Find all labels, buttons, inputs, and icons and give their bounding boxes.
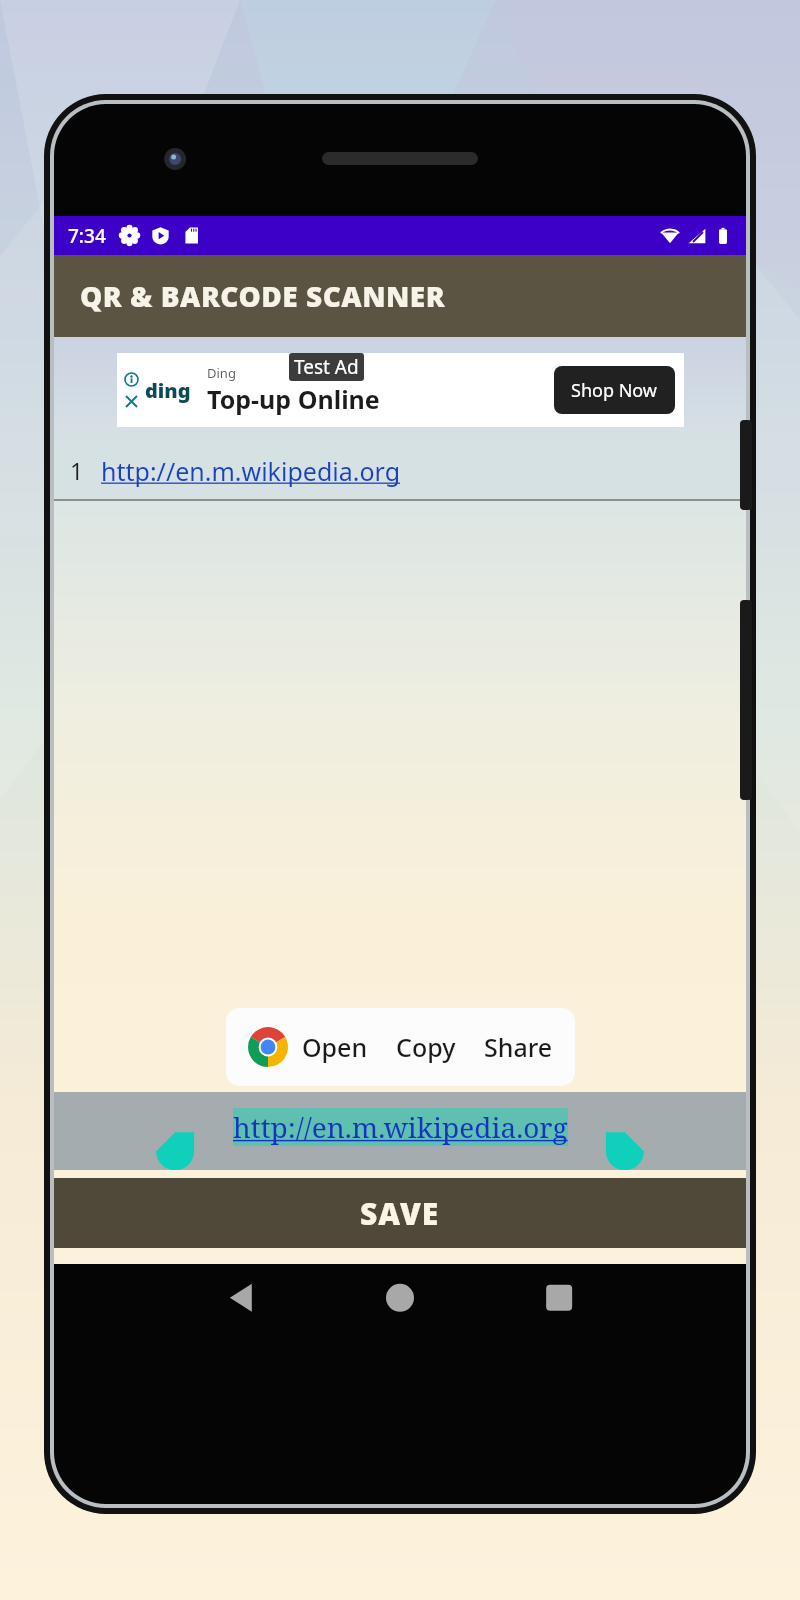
button[interactable]: Shop Now (554, 366, 675, 414)
staticText: Ding (207, 364, 236, 382)
other: Close ad (124, 394, 139, 409)
staticText: ding (145, 377, 191, 404)
button[interactable]: 1 (54, 442, 746, 499)
staticText: Share (484, 1030, 553, 1064)
button[interactable]: Share (484, 1030, 553, 1064)
staticText: http://en.m.wikipedia.org (233, 1108, 568, 1146)
staticText: 7:34 (68, 223, 106, 249)
other: Ad info (124, 372, 139, 387)
other: Chrome (248, 1027, 288, 1067)
button[interactable]: Copy (396, 1030, 456, 1064)
staticText: Top-up Online (207, 382, 380, 416)
staticText: 1 (70, 455, 84, 486)
button[interactable]: Open (302, 1030, 368, 1064)
staticText: Test Ad (294, 354, 359, 380)
staticText: Copy (396, 1030, 456, 1064)
button[interactable]: SAVE (54, 1178, 746, 1248)
button[interactable]: Ad info (117, 353, 684, 427)
staticText: QR & BARCODE SCANNER (80, 277, 446, 315)
staticText: Shop Now (571, 378, 658, 403)
staticText: http://en.m.wikipedia.org (101, 454, 401, 488)
staticText: SAVE (360, 1193, 440, 1234)
staticText: Open (302, 1030, 368, 1064)
button[interactable]: http://en.m.wikipedia.org (233, 1108, 568, 1146)
